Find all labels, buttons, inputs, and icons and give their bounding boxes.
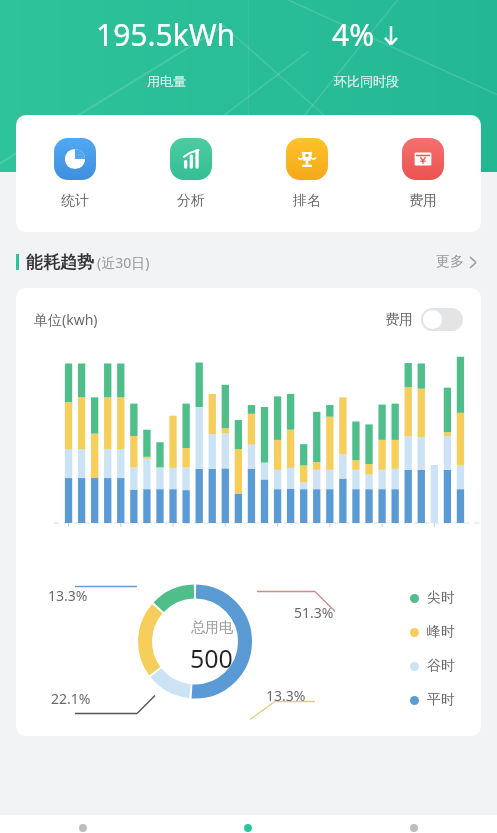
button[interactable]: 更多	[432, 249, 481, 275]
button[interactable]: 首页	[0, 815, 165, 833]
staticText: 环比同时段	[334, 73, 399, 89]
button[interactable]: 统计	[16, 115, 133, 232]
staticText: 谷时	[427, 657, 455, 675]
button[interactable]: 排名	[249, 115, 365, 232]
staticText: 51.3%	[294, 603, 334, 622]
staticText: 费用	[409, 192, 437, 210]
staticText: 195.5kWh	[96, 14, 236, 55]
button[interactable]: 数据	[165, 815, 331, 833]
staticText: 13.3%	[48, 586, 88, 605]
staticText: 500	[190, 641, 233, 675]
staticText: 更多	[436, 253, 464, 271]
button[interactable]: 我的	[331, 815, 497, 833]
staticText: 用电量	[147, 73, 186, 89]
staticText: 能耗趋势	[26, 252, 94, 273]
staticText: 尖时	[427, 589, 455, 607]
staticText: 总用电	[191, 619, 233, 637]
staticText: 峰时	[427, 623, 455, 641]
staticText: (近30日)	[97, 253, 150, 272]
staticText: 单位(kwh)	[34, 310, 98, 329]
staticText: 平时	[427, 691, 455, 709]
staticText: 统计	[61, 192, 89, 210]
staticText: 费用	[385, 311, 413, 329]
staticText: 22.1%	[51, 689, 91, 708]
staticText: 4%	[332, 14, 375, 55]
staticText: 13.3%	[266, 686, 306, 705]
staticText: 分析	[177, 192, 205, 210]
staticText: 排名	[293, 192, 321, 210]
button[interactable]: 费用开关	[421, 308, 463, 331]
button[interactable]: 分析	[133, 115, 249, 232]
button[interactable]: 费用	[365, 115, 481, 232]
